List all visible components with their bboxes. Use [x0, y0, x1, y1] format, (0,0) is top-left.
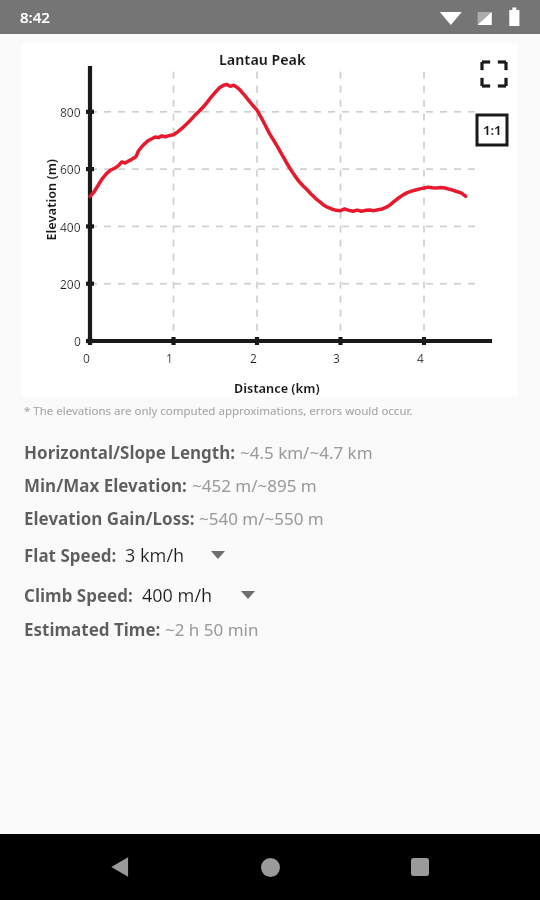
- staticText: 3: [333, 350, 340, 366]
- button[interactable]: Recent apps: [391, 838, 449, 896]
- staticText: 3 km/h: [125, 543, 185, 568]
- staticText: 8:42: [20, 7, 50, 27]
- staticText: 800: [60, 104, 81, 120]
- staticText: Min/Max Elevation:: [24, 474, 192, 497]
- staticText: ~452 m/~895 m: [192, 474, 317, 497]
- staticText: 0: [74, 333, 81, 349]
- button[interactable]: Min/Max Elevation:: [24, 474, 540, 497]
- staticText: 200: [60, 276, 81, 292]
- staticText: 600: [60, 161, 81, 177]
- staticText: ~4.5 km/~4.7 km: [240, 441, 373, 464]
- staticText: Flat Speed:: [24, 544, 121, 567]
- button[interactable]: Climb Speed:: [24, 575, 540, 615]
- staticText: Estimated Time:: [24, 618, 165, 641]
- staticText: ~2 h 50 min: [165, 618, 259, 641]
- staticText: Elevation (m): [42, 158, 59, 240]
- staticText: 0: [83, 350, 90, 366]
- staticText: 4: [417, 350, 424, 366]
- staticText: Horizontal/Slope Length:: [24, 441, 240, 464]
- staticText: Lantau Peak: [219, 50, 306, 69]
- button[interactable]: Fullscreen: [478, 58, 510, 90]
- staticText: Distance (km): [234, 380, 320, 397]
- staticText: 1: [166, 350, 173, 366]
- staticText: 1:1: [483, 121, 502, 139]
- button[interactable]: Elevation Gain/Loss:: [24, 507, 540, 530]
- button[interactable]: Back: [92, 838, 150, 896]
- staticText: ~540 m/~550 m: [199, 507, 324, 530]
- staticText: Climb Speed:: [24, 584, 138, 607]
- button[interactable]: Reset 1 to 1 scale: [477, 115, 507, 145]
- staticText: 400: [60, 219, 81, 235]
- button[interactable]: Estimated Time:: [24, 618, 540, 641]
- staticText: * The elevations are only computed appro…: [24, 403, 413, 419]
- button[interactable]: Home: [241, 838, 299, 896]
- staticText: 400 m/h: [142, 583, 213, 608]
- staticText: 2: [250, 350, 257, 366]
- staticText: Elevation Gain/Loss:: [24, 507, 199, 530]
- button[interactable]: Flat Speed:: [24, 535, 540, 575]
- button[interactable]: Horizontal/Slope Length:: [24, 441, 540, 464]
